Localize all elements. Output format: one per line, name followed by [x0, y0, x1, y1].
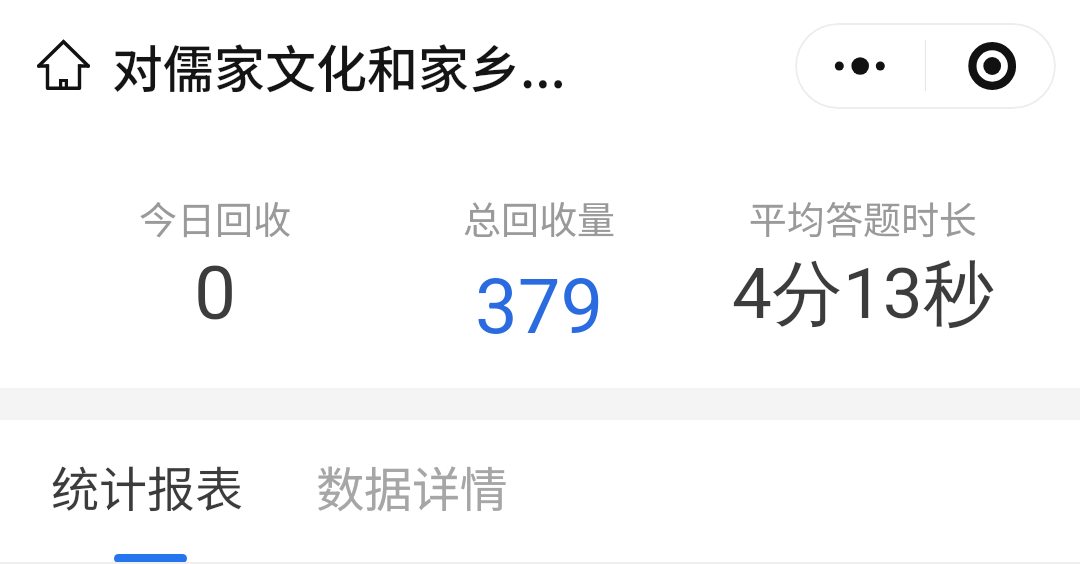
button[interactable]: 平均答题时长 [701, 190, 1025, 334]
staticText: 今日回收 [139, 190, 292, 245]
staticText: 0 [194, 249, 237, 337]
button[interactable]: 今日回收 [53, 190, 377, 333]
button[interactable]: Close mini program [926, 23, 1056, 109]
button[interactable]: More options [795, 23, 925, 109]
staticText: 379 [475, 262, 604, 351]
staticText: 统计报表 [51, 451, 244, 521]
button[interactable]: Home [37, 40, 90, 90]
button[interactable]: 数据详情 [316, 451, 509, 554]
button[interactable]: 统计报表 [51, 451, 244, 563]
staticText: 4分13秒 [732, 250, 994, 339]
staticText: 总回收量 [463, 190, 616, 245]
staticText: 平均答题时长 [749, 190, 978, 245]
staticText: 数据详情 [316, 451, 509, 521]
staticText: 对儒家文化和家乡... [112, 29, 566, 103]
button[interactable]: 总回收量 [377, 190, 701, 334]
